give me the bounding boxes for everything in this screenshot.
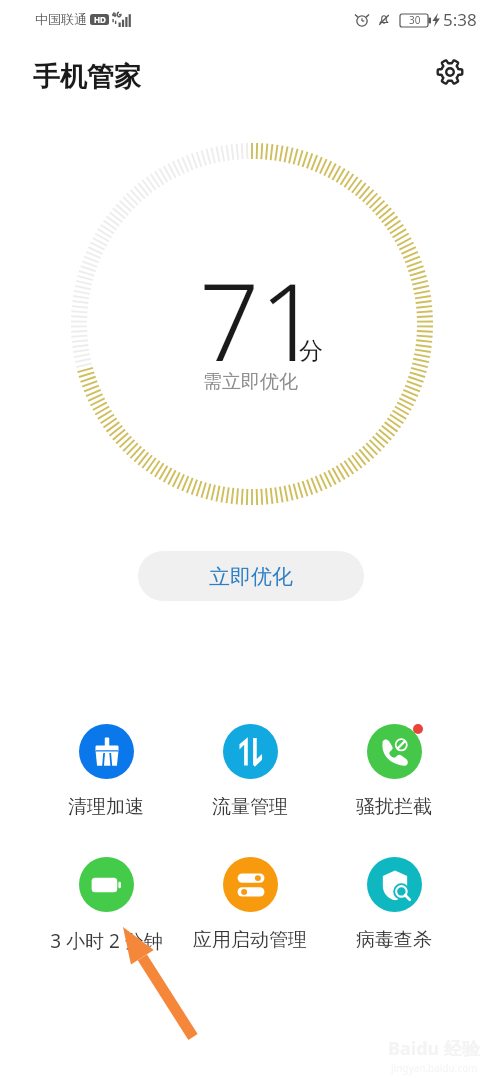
staticText: 立即优化: [209, 564, 293, 590]
button[interactable]: 流量管理: [179, 720, 321, 814]
button[interactable]: 病毒查杀: [323, 853, 465, 947]
button[interactable]: 清理加速: [35, 720, 177, 814]
staticText: 3 小时 2 分钟: [50, 928, 163, 954]
staticText: 分: [299, 336, 323, 366]
staticText: 应用启动管理: [193, 928, 307, 952]
button[interactable]: 骚扰拦截: [323, 720, 465, 814]
staticText: HD: [94, 14, 106, 25]
staticText: 需立即优化: [203, 370, 298, 394]
staticText: Baidu 经验: [388, 1036, 480, 1061]
button[interactable]: 3 小时 2 分钟: [35, 853, 177, 947]
staticText: 清理加速: [68, 795, 144, 819]
staticText: 流量管理: [212, 795, 288, 819]
staticText: 71: [199, 248, 321, 392]
staticText: 骚扰拦截: [356, 795, 432, 819]
staticText: 手机管家: [33, 60, 141, 94]
button[interactable]: Settings: [430, 52, 470, 92]
staticText: 5:38: [443, 8, 477, 31]
staticText: 30: [409, 13, 421, 27]
button[interactable]: 应用启动管理: [179, 853, 321, 947]
button[interactable]: 立即优化: [138, 551, 364, 601]
staticText: jingyan.baidu.com: [391, 1061, 478, 1075]
staticText: 病毒查杀: [356, 928, 432, 952]
staticText: 中国联通: [35, 11, 87, 27]
